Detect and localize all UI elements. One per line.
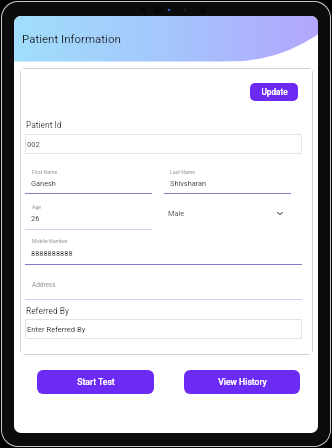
staticText: Update [261,87,288,97]
staticText: Address [32,281,56,289]
staticText: 26 [31,214,40,223]
staticText: Shivsharan [170,179,207,188]
staticText: Ganesh [31,179,56,188]
staticText: Mobile Number [32,238,68,244]
staticText: Patient Information [22,32,121,45]
button[interactable] [164,205,297,224]
staticText: 002 [27,140,40,149]
staticText: Patient Id [26,120,62,130]
button[interactable]: Start Test [37,370,154,394]
staticText: First Name [32,169,58,175]
staticText: 8888888888 [31,249,73,258]
button[interactable]: Update [250,83,298,101]
button[interactable]: View History [184,370,300,394]
staticText: Start Test [77,377,115,387]
other: Select gender [277,212,283,215]
button[interactable]: Enter Referred By [25,319,302,339]
staticText: Referred By [26,306,69,316]
staticText: View History [218,377,267,387]
button[interactable]: 002 [25,134,302,154]
staticText: Age [32,204,42,210]
staticText: Last Name [170,169,196,175]
staticText: Enter Referred By [27,325,86,334]
staticText: Male [168,209,185,218]
